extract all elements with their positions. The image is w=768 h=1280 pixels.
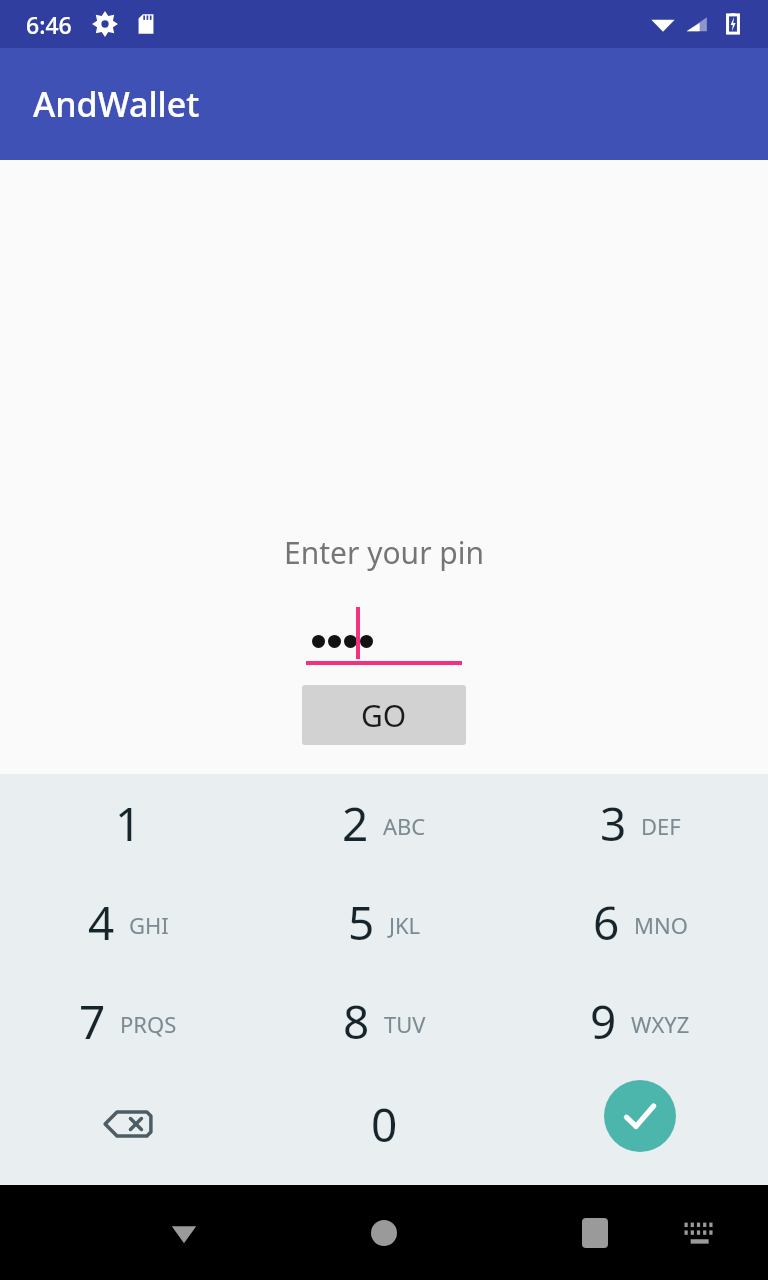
staticText: 4 — [88, 891, 115, 954]
staticText: GO — [361, 695, 407, 736]
button[interactable]: 7 — [0, 972, 256, 1071]
button[interactable]: Recents — [520, 1185, 670, 1280]
button[interactable]: GO — [302, 685, 466, 745]
staticText: ABC — [383, 811, 426, 841]
staticText: 9 — [590, 990, 617, 1053]
staticText: 5 — [348, 891, 375, 954]
staticText: JKL — [389, 910, 421, 940]
staticText: TUV — [384, 1009, 426, 1039]
button[interactable]: 4 — [0, 873, 256, 972]
button[interactable]: 2 — [256, 774, 512, 873]
staticText: DEF — [641, 811, 681, 841]
button[interactable]: 3 — [512, 774, 768, 873]
button[interactable]: 0 — [256, 1071, 512, 1185]
staticText: MNO — [634, 910, 688, 940]
button[interactable]: Backspace — [0, 1071, 256, 1185]
button[interactable]: 6 — [512, 873, 768, 972]
staticText: 1 — [115, 792, 142, 855]
button[interactable]: 9 — [512, 972, 768, 1071]
staticText: 6 — [593, 891, 620, 954]
staticText: 2 — [342, 792, 369, 855]
button[interactable]: Enter — [512, 1071, 768, 1185]
staticText: 6:46 — [26, 9, 72, 40]
staticText: GHI — [129, 910, 169, 940]
button[interactable]: 8 — [256, 972, 512, 1071]
staticText: 3 — [600, 792, 627, 855]
staticText: 0 — [371, 1093, 398, 1156]
staticText: AndWallet — [33, 81, 200, 127]
staticText: WXYZ — [631, 1009, 690, 1039]
staticText: Enter your pin — [284, 532, 485, 573]
button[interactable]: 1 — [0, 774, 256, 873]
staticText: PRQS — [120, 1009, 177, 1039]
button[interactable]: Back — [109, 1185, 259, 1280]
button[interactable]: 5 — [256, 873, 512, 972]
staticText: 8 — [343, 990, 370, 1053]
button[interactable]: Switch keyboard — [655, 1185, 745, 1280]
staticText: 7 — [79, 990, 106, 1053]
button[interactable]: Home — [309, 1185, 459, 1280]
